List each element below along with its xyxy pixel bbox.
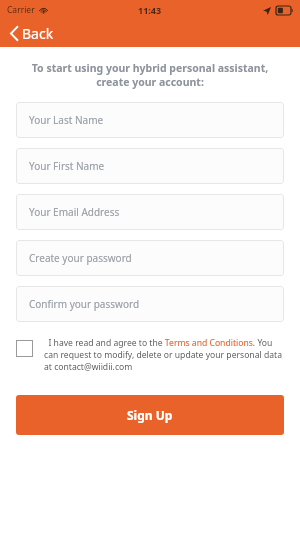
- other: Agree to terms checkbox: [16, 340, 33, 357]
- button[interactable]: Create your password: [16, 240, 284, 276]
- button[interactable]: Confirm your password: [16, 286, 284, 322]
- staticText: I have read and agree to the Terms and C…: [44, 337, 284, 373]
- staticText: 11:43: [138, 4, 162, 16]
- staticText: Confirm your password: [29, 297, 140, 311]
- staticText: Back: [22, 24, 54, 43]
- button[interactable]: Your Last Name: [16, 102, 284, 138]
- staticText: Sign Up: [127, 407, 173, 423]
- staticText: Create your password: [29, 251, 132, 265]
- staticText: Carrier: [7, 4, 35, 16]
- staticText: Your First Name: [29, 159, 105, 173]
- button[interactable]: Your First Name: [16, 148, 284, 184]
- button[interactable]: Agree to terms checkbox: [16, 337, 284, 373]
- button[interactable]: Sign Up: [16, 395, 284, 435]
- button[interactable]: Your Email Address: [16, 194, 284, 230]
- staticText: Your Email Address: [29, 205, 120, 219]
- button[interactable]: Back: [8, 21, 56, 46]
- staticText: Your Last Name: [29, 113, 104, 127]
- staticText: To start using your hybrid personal assi…: [30, 61, 270, 89]
